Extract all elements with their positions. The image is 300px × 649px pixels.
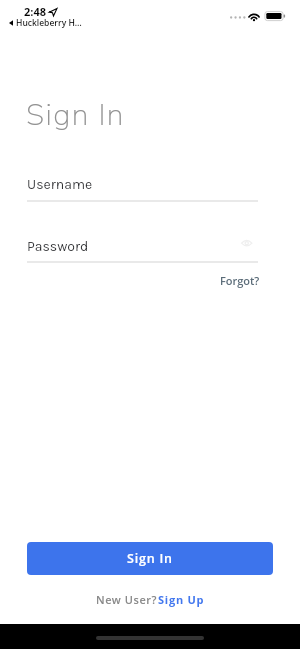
staticText: Forgot? [220,273,260,288]
button[interactable]: Show password [240,236,254,250]
button[interactable]: Forgot? [220,273,260,288]
button[interactable]: Sign Up [158,592,205,607]
staticText: Sign Up [158,592,205,607]
staticText: Password [27,238,89,254]
staticText: Huckleberry H… [16,17,82,29]
staticText: New User? [96,592,158,607]
staticText: Sign In [127,550,173,567]
button[interactable]: Sign In [27,542,273,575]
staticText: Sign In [26,95,125,136]
staticText: Username [27,176,93,192]
staticText: 2:48 [24,4,46,19]
